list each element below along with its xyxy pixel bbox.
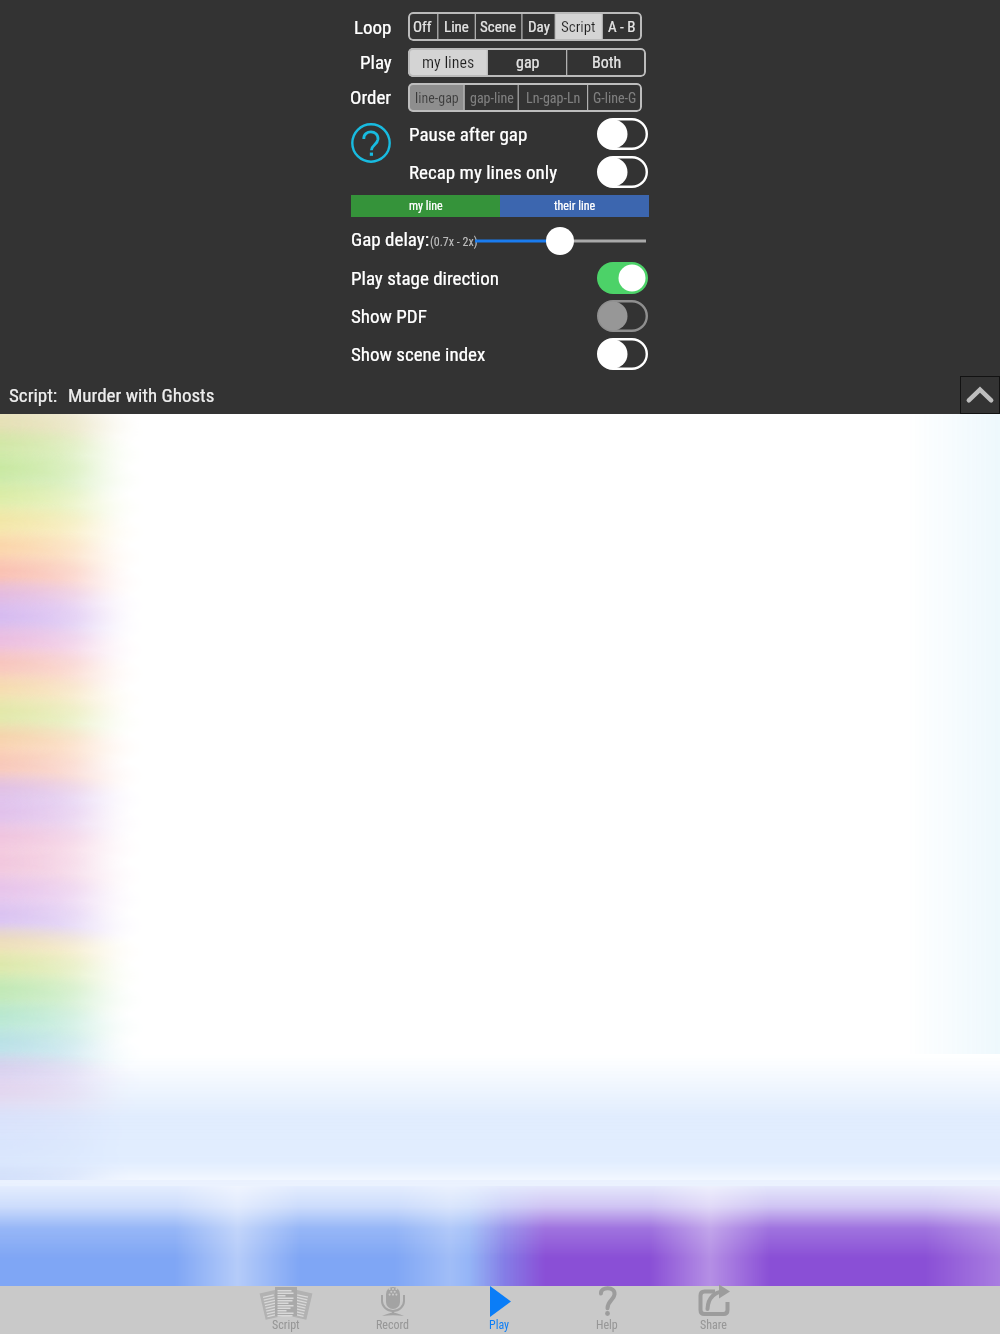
button[interactable]: Ln-gap-Ln [519, 83, 588, 112]
staticText: Show PDF [351, 305, 427, 327]
staticText: Off [413, 18, 432, 36]
button[interactable]: A - B [602, 12, 642, 41]
staticText: Loop [354, 16, 392, 38]
staticText: Line [444, 18, 469, 36]
staticText: Ln-gap-Ln [526, 90, 581, 106]
button[interactable]: Record [339, 1286, 446, 1334]
staticText: my lines [422, 53, 475, 72]
button[interactable]: Collapse panel [960, 376, 1000, 414]
staticText: Scene [480, 18, 517, 36]
staticText: gap-line [470, 90, 514, 106]
staticText: their line [554, 199, 596, 213]
button[interactable]: gap-line [465, 83, 519, 112]
staticText: (0.7x - 2x) [430, 235, 478, 249]
staticText: Gap delay: [351, 228, 430, 250]
button[interactable]: Play [446, 1286, 553, 1334]
staticText: Play [489, 1318, 510, 1332]
button[interactable]: Help [553, 1286, 660, 1334]
staticText: A - B [608, 18, 636, 36]
staticText: Play [360, 51, 392, 73]
button[interactable]: Show scene index [597, 338, 648, 370]
button[interactable]: Day [522, 12, 555, 41]
button[interactable]: their line [500, 195, 649, 217]
button[interactable]: Help [351, 123, 391, 163]
staticText: Share [700, 1318, 727, 1332]
staticText: Script: [9, 384, 58, 406]
staticText: Order [350, 86, 392, 108]
button[interactable]: line-gap [408, 83, 465, 112]
staticText: gap [516, 53, 540, 72]
button[interactable]: Show PDF [597, 300, 648, 332]
button[interactable]: Script [555, 12, 602, 41]
staticText: Record [376, 1318, 410, 1332]
staticText: my line [409, 199, 443, 213]
staticText: Pause after gap [409, 123, 528, 145]
staticText: Help [596, 1318, 618, 1332]
button[interactable]: Share [660, 1286, 767, 1334]
button[interactable]: Gap delay slider [470, 226, 650, 256]
button[interactable]: Recap my lines only [597, 156, 648, 188]
button[interactable]: Line [437, 12, 475, 41]
staticText: Script [272, 1318, 300, 1332]
button[interactable]: my line [351, 195, 500, 217]
button[interactable]: gap [488, 48, 567, 77]
staticText: Script [561, 18, 596, 36]
button[interactable]: Scene [475, 12, 522, 41]
staticText: line-gap [415, 90, 459, 106]
staticText: Both [592, 53, 622, 72]
button[interactable]: Script: [9, 384, 215, 406]
button[interactable]: my lines [408, 48, 488, 77]
staticText: Day [528, 18, 550, 36]
staticText: Show scene index [351, 343, 486, 365]
staticText: Murder with Ghosts [68, 384, 215, 406]
button[interactable]: G-line-G [588, 83, 642, 112]
button[interactable]: Play stage direction [597, 262, 648, 294]
button[interactable]: Off [408, 12, 437, 41]
staticText: Play stage direction [351, 267, 499, 289]
staticText: G-line-G [593, 90, 637, 106]
button[interactable]: Script [232, 1286, 339, 1334]
button[interactable]: Pause after gap [597, 118, 648, 150]
staticText: Recap my lines only [409, 161, 558, 183]
button[interactable]: Both [567, 48, 646, 77]
